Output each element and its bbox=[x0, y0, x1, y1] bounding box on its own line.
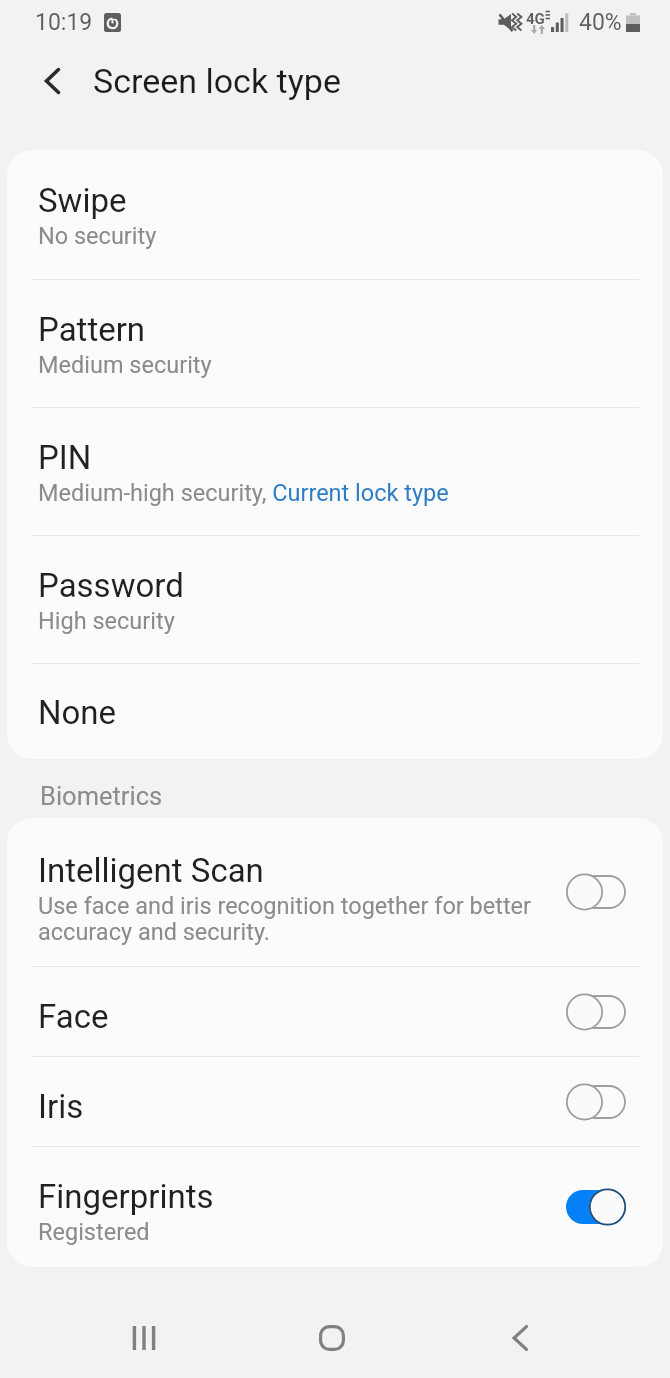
button[interactable]: Switch on bbox=[566, 1188, 626, 1226]
button[interactable]: Face bbox=[7, 967, 663, 1056]
staticText: 40% bbox=[579, 9, 622, 36]
staticText: 10:19 bbox=[35, 9, 93, 36]
button[interactable]: Back bbox=[484, 1302, 556, 1374]
button[interactable]: Password bbox=[7, 536, 663, 663]
staticText: Pattern bbox=[38, 310, 146, 349]
staticText: Iris bbox=[38, 1087, 84, 1126]
staticText: Swipe bbox=[38, 181, 127, 220]
staticText: Screen lock type bbox=[93, 61, 341, 101]
staticText: Use face and iris recognition together f… bbox=[38, 892, 532, 946]
button[interactable]: Intelligent Scan bbox=[7, 818, 663, 966]
button[interactable]: Iris bbox=[7, 1057, 663, 1146]
staticText: PIN bbox=[38, 438, 92, 477]
button[interactable]: PIN bbox=[7, 408, 663, 535]
button[interactable]: None bbox=[7, 664, 663, 759]
staticText: Fingerprints bbox=[38, 1177, 214, 1216]
button[interactable]: Home bbox=[296, 1302, 368, 1374]
staticText: Password bbox=[38, 566, 184, 605]
button[interactable]: Switch off bbox=[566, 993, 626, 1031]
button[interactable]: Recents bbox=[108, 1302, 180, 1374]
staticText: Registered bbox=[38, 1218, 150, 1246]
staticText: No security bbox=[38, 222, 157, 250]
staticText: Face bbox=[38, 997, 109, 1036]
button[interactable]: Switch off bbox=[566, 873, 626, 911]
staticText: None bbox=[38, 693, 117, 732]
staticText: High security bbox=[38, 607, 175, 635]
staticText: Medium security bbox=[38, 351, 212, 379]
button[interactable]: Pattern bbox=[7, 280, 663, 407]
staticText: 4G bbox=[526, 10, 545, 28]
staticText: Biometrics bbox=[40, 781, 163, 811]
button[interactable]: Fingerprints bbox=[7, 1147, 663, 1267]
staticText: Medium-high security, Current lock type bbox=[38, 479, 449, 507]
button[interactable]: Back bbox=[31, 44, 73, 118]
staticText: Intelligent Scan bbox=[38, 851, 264, 890]
button[interactable]: Switch off bbox=[566, 1083, 626, 1121]
button[interactable]: Swipe bbox=[7, 150, 663, 279]
